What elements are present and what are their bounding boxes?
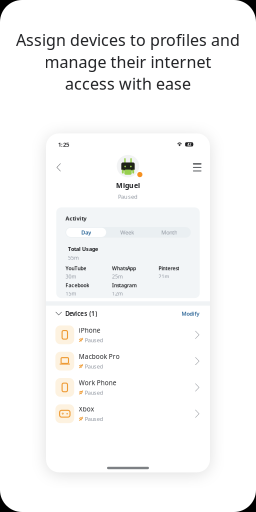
staticText: Paused <box>85 389 103 396</box>
staticText: Pinterest <box>158 265 179 272</box>
staticText: Day <box>81 229 91 236</box>
staticText: Facebook <box>65 282 89 289</box>
staticText: WhatsApp <box>112 265 136 272</box>
button[interactable]: Modify <box>181 310 199 317</box>
staticText: 25m <box>112 273 123 280</box>
staticText: 1:25 <box>58 140 69 148</box>
button[interactable]: Macbook Pro <box>46 348 210 374</box>
button[interactable]: Back <box>56 162 69 173</box>
button[interactable]: iPhone <box>46 322 210 348</box>
staticText: 30m <box>65 273 76 280</box>
button[interactable]: Work Phone <box>46 374 210 401</box>
staticText: Paused <box>118 193 138 200</box>
staticText: manage their internet <box>44 51 211 73</box>
staticText: 12m <box>112 290 123 297</box>
staticText: iPhone <box>79 326 101 335</box>
button[interactable]: Menu <box>188 162 201 173</box>
button[interactable]: Month <box>148 228 190 237</box>
staticText: 15m <box>65 290 76 297</box>
staticText: 42 <box>187 142 191 147</box>
button[interactable]: Week <box>106 228 148 237</box>
staticText: Xbox <box>79 405 94 413</box>
staticText: Month <box>161 229 177 236</box>
staticText: Miguel <box>116 181 140 190</box>
staticText: Paused <box>85 415 103 423</box>
staticText: YouTube <box>65 265 86 272</box>
staticText: Work Phone <box>79 378 117 387</box>
staticText: Paused <box>85 336 103 344</box>
staticText: Paused <box>85 362 103 370</box>
staticText: 21m <box>158 273 169 280</box>
staticText: Activity <box>65 215 86 222</box>
button[interactable]: Xbox <box>46 401 210 427</box>
staticText: Week <box>120 229 134 236</box>
staticText: Assign devices to profiles and <box>16 29 240 51</box>
staticText: Total Usage <box>68 245 98 253</box>
button[interactable]: Day <box>66 228 106 237</box>
staticText: 55m <box>68 254 79 261</box>
staticText: Instagram <box>112 282 137 289</box>
staticText: access with ease <box>65 73 191 94</box>
staticText: Devices (1) <box>65 309 97 318</box>
staticText: Macbook Pro <box>79 352 120 361</box>
staticText: Modify <box>181 310 199 317</box>
